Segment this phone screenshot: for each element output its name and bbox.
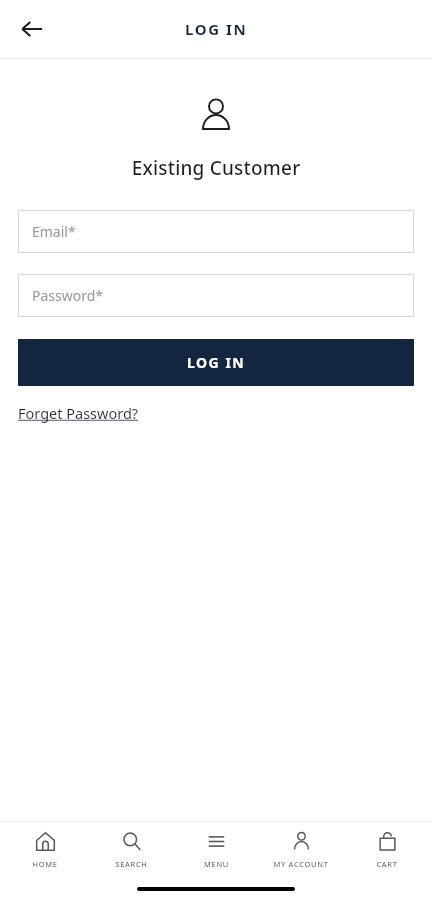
staticText: SEARCH [115, 859, 148, 869]
staticText: Password* [32, 286, 104, 305]
staticText: MY ACCOUNT [273, 859, 329, 869]
staticText: Email* [32, 222, 76, 241]
button[interactable]: MENU [176, 827, 256, 873]
staticText: Forget Password? [18, 403, 139, 423]
button[interactable]: Password* [18, 274, 414, 317]
button[interactable]: CART [347, 827, 427, 873]
button[interactable]: SEARCH [91, 827, 171, 873]
button[interactable]: HOME [5, 827, 85, 873]
button[interactable]: Email* [18, 210, 414, 253]
button[interactable]: LOG IN [18, 339, 414, 386]
staticText: HOME [32, 859, 58, 869]
button[interactable]: Back [8, 5, 56, 53]
staticText: LOG IN [185, 19, 248, 39]
staticText: CART [376, 859, 398, 869]
staticText: LOG IN [187, 353, 246, 372]
button[interactable]: MY ACCOUNT [261, 827, 341, 873]
staticText: MENU [204, 859, 229, 869]
staticText: Existing Customer [0, 155, 432, 181]
button[interactable]: Forget Password? [18, 403, 139, 423]
